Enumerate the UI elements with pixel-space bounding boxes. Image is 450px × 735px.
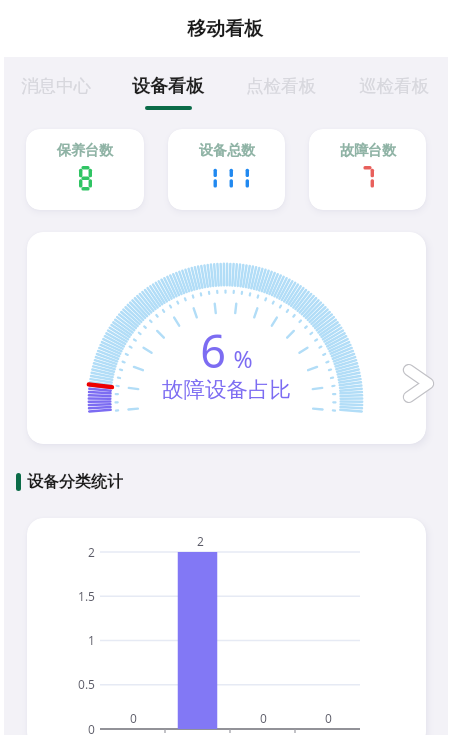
button[interactable]: 6	[27, 232, 426, 444]
staticText: 1.5	[78, 588, 95, 604]
staticText: 保养台数	[57, 142, 113, 160]
staticText: 2	[88, 544, 95, 560]
button[interactable]: 点检看板	[224, 57, 337, 115]
staticText: 设备总数	[199, 142, 255, 160]
staticText: 消息中心	[21, 75, 91, 97]
button[interactable]: 设备总数	[168, 129, 285, 210]
staticText: 0	[88, 721, 95, 735]
staticText: 2	[197, 533, 204, 549]
staticText: 移动看板	[187, 17, 263, 41]
button[interactable]: 保养台数	[26, 129, 144, 210]
staticText: 0	[325, 710, 332, 726]
button[interactable]: 巡检看板	[337, 57, 450, 115]
staticText: 点检看板	[246, 75, 316, 97]
staticText: 1	[88, 632, 95, 648]
staticText: 0	[130, 710, 137, 726]
button[interactable]: Next	[400, 360, 436, 407]
button[interactable]: 设备看板	[112, 57, 224, 115]
staticText: 设备分类统计	[27, 472, 123, 491]
staticText: 0	[260, 710, 267, 726]
staticText: %	[233, 343, 253, 374]
staticText: 故障台数	[340, 142, 396, 160]
staticText: 巡检看板	[359, 75, 429, 97]
staticText: 0.5	[78, 676, 95, 692]
button[interactable]: 2	[27, 518, 426, 735]
button[interactable]: 故障台数	[309, 129, 426, 210]
staticText: 设备看板	[132, 75, 204, 98]
staticText: 故障设备占比	[162, 376, 291, 403]
button[interactable]: 消息中心	[0, 57, 112, 115]
staticText: 6	[200, 320, 226, 381]
